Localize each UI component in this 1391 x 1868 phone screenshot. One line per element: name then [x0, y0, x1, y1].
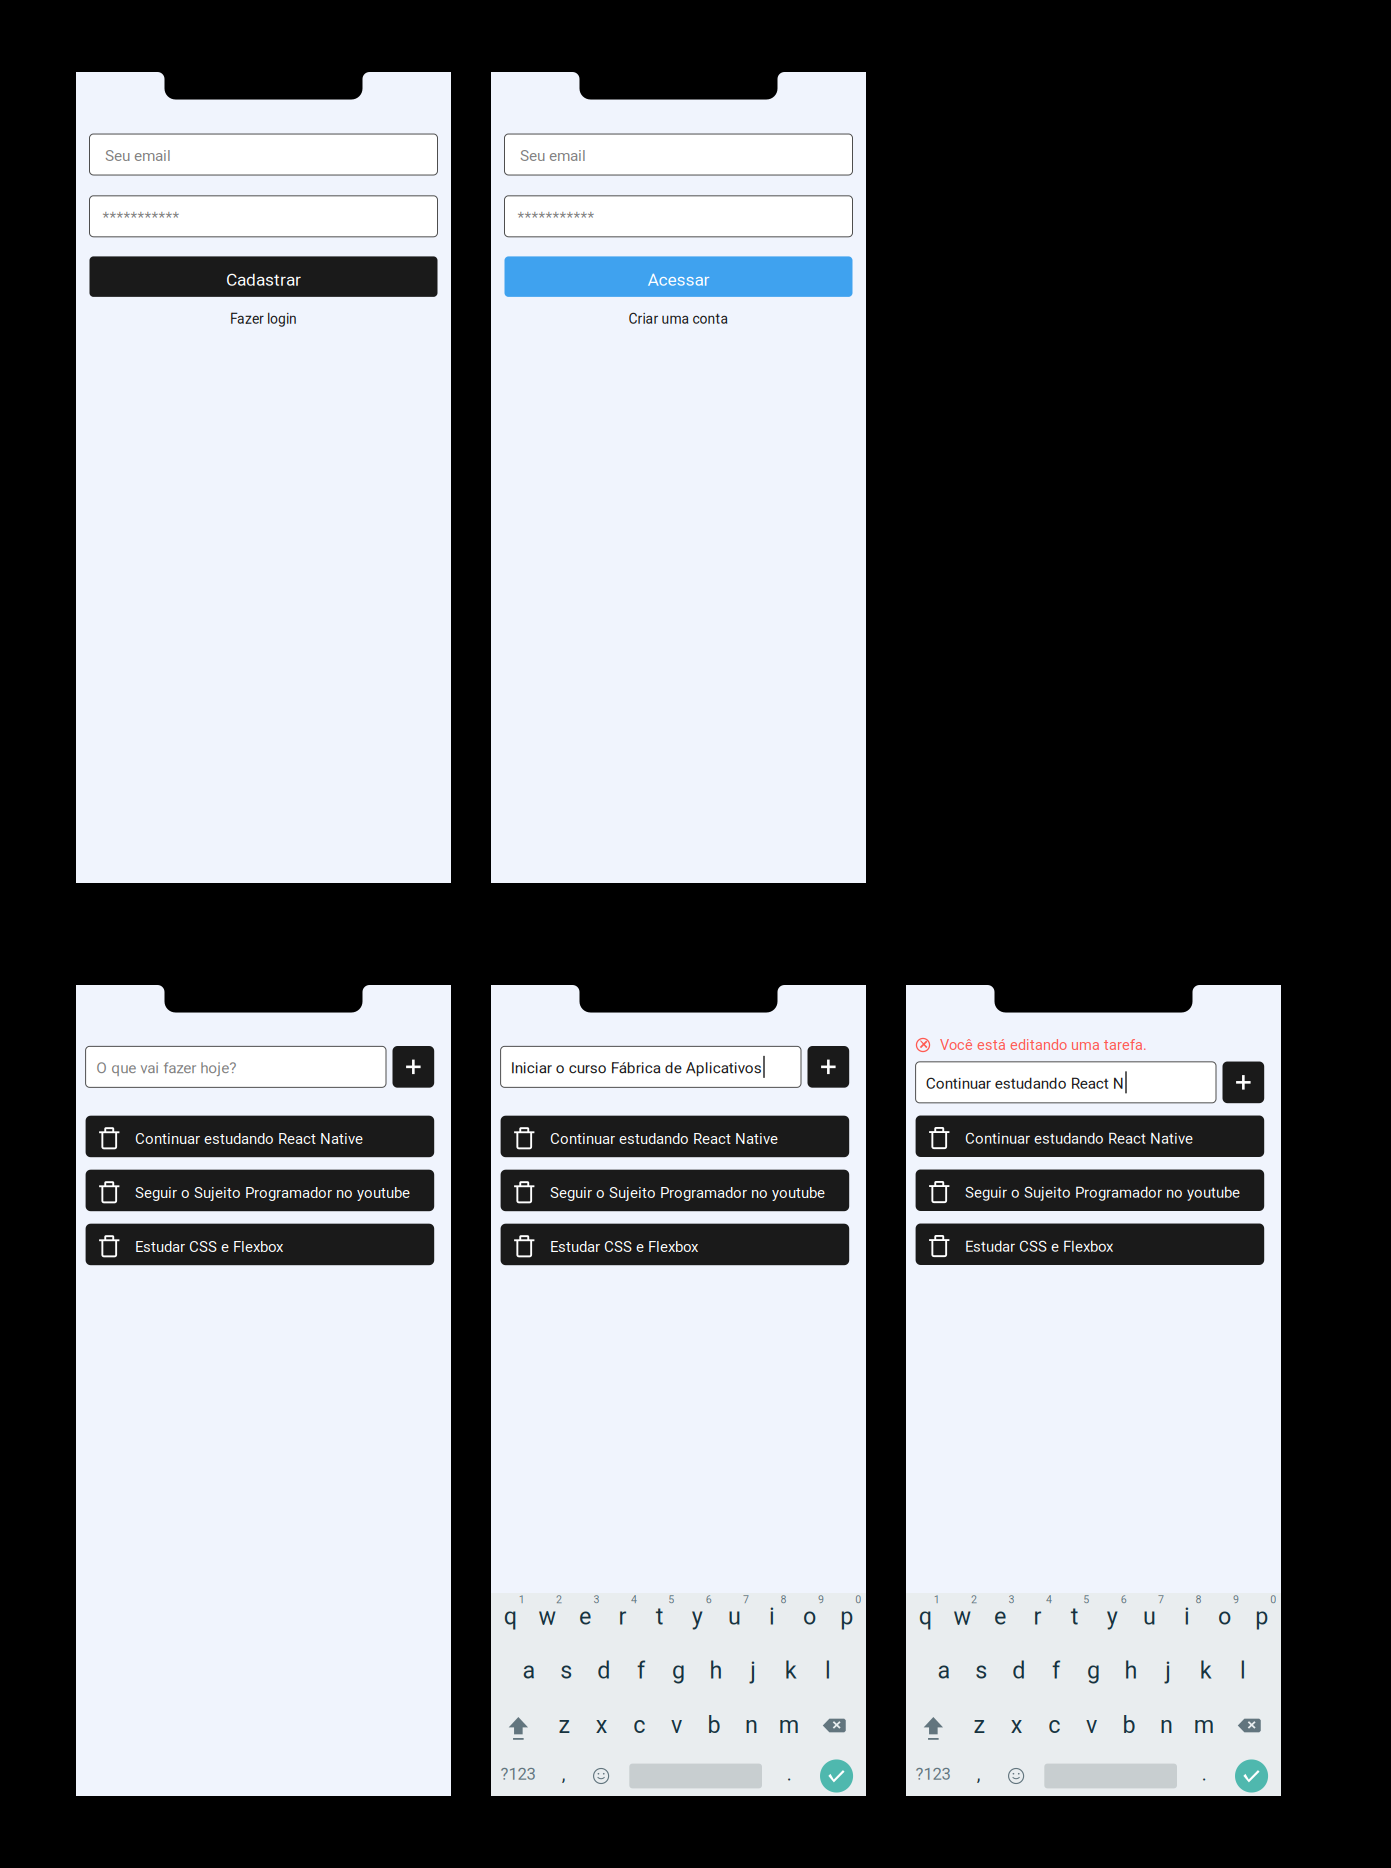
staticText: ?123	[500, 1764, 535, 1784]
staticText: j	[1165, 1657, 1171, 1684]
staticText: w	[954, 1603, 972, 1630]
staticText: x	[596, 1711, 608, 1739]
staticText: Iniciar o curso Fábrica de Aplicativos	[511, 1059, 762, 1077]
staticText: a	[937, 1657, 950, 1684]
staticText: i	[1184, 1603, 1190, 1630]
button[interactable]: Adicionar tarefa	[392, 1046, 434, 1088]
staticText: i	[769, 1603, 775, 1630]
staticText: d	[597, 1657, 610, 1684]
staticText: l	[1240, 1657, 1246, 1684]
staticText: c	[633, 1711, 645, 1739]
staticText: Continuar estudando React Native	[550, 1130, 778, 1148]
staticText: y	[1107, 1603, 1118, 1630]
staticText: .	[1202, 1763, 1207, 1785]
button[interactable]: Criar uma conta	[504, 308, 852, 330]
staticText: Acessar	[647, 270, 709, 290]
staticText: Continuar estudando React Native	[135, 1130, 363, 1148]
staticText: 6	[1121, 1593, 1127, 1606]
staticText: t	[656, 1603, 664, 1630]
staticText: Continuar estudando React N	[926, 1075, 1124, 1093]
staticText: Seu email	[520, 147, 586, 165]
staticText: p	[1255, 1603, 1268, 1630]
staticText: ?123	[915, 1764, 950, 1784]
staticText: ,	[562, 1763, 566, 1785]
staticText: m	[779, 1711, 799, 1739]
staticText: j	[750, 1657, 756, 1684]
staticText: t	[1071, 1603, 1079, 1630]
staticText: b	[1122, 1711, 1135, 1739]
staticText: Seguir o Sujeito Programador no youtube	[135, 1184, 410, 1202]
staticText: 0	[855, 1593, 861, 1606]
staticText: h	[1124, 1657, 1137, 1684]
staticText: r	[618, 1603, 626, 1630]
staticText: c	[1048, 1711, 1060, 1739]
staticText: 4	[1046, 1593, 1052, 1606]
button[interactable]: Seguir o Sujeito Programador no youtube	[916, 1169, 1264, 1211]
staticText: Estudar CSS e Flexbox	[550, 1238, 698, 1256]
staticText: q	[504, 1603, 517, 1630]
button[interactable]: Estudar CSS e Flexbox	[501, 1224, 849, 1265]
staticText: s	[560, 1657, 572, 1684]
staticText: n	[745, 1711, 758, 1739]
staticText: Fazer login	[230, 311, 297, 327]
staticText: z	[973, 1711, 985, 1739]
staticText: 8	[1195, 1593, 1201, 1606]
staticText: Seu email	[105, 147, 171, 165]
staticText: k	[1200, 1657, 1212, 1684]
staticText: n	[1160, 1711, 1173, 1739]
button[interactable]: Acessar	[504, 256, 852, 297]
staticText: 6	[706, 1593, 712, 1606]
staticText: Criar uma conta	[628, 311, 728, 327]
staticText: q	[919, 1603, 932, 1630]
staticText: Seguir o Sujeito Programador no youtube	[550, 1184, 825, 1202]
staticText: d	[1012, 1657, 1025, 1684]
staticText: b	[707, 1711, 720, 1739]
button[interactable]: Adicionar tarefa	[807, 1046, 849, 1088]
button[interactable]: Estudar CSS e Flexbox	[86, 1224, 434, 1265]
button[interactable]: Continuar estudando React Native	[501, 1116, 849, 1157]
staticText: m	[1194, 1711, 1214, 1739]
staticText: 8	[780, 1593, 786, 1606]
button[interactable]: Estudar CSS e Flexbox	[916, 1223, 1264, 1265]
staticText: s	[975, 1657, 987, 1684]
staticText: O que vai fazer hoje?	[96, 1059, 236, 1077]
button[interactable]: Seguir o Sujeito Programador no youtube	[86, 1170, 434, 1211]
staticText: Continuar estudando React Native	[965, 1130, 1193, 1147]
staticText: 3	[1008, 1593, 1014, 1606]
staticText: Você está editando uma tarefa.	[940, 1036, 1147, 1054]
staticText: ***********	[102, 208, 179, 226]
staticText: a	[522, 1657, 535, 1684]
staticText: ***********	[517, 208, 594, 226]
staticText: r	[1033, 1603, 1041, 1630]
staticText: Seguir o Sujeito Programador no youtube	[965, 1184, 1240, 1201]
staticText: e	[579, 1603, 591, 1630]
staticText: w	[539, 1603, 557, 1630]
staticText: Estudar CSS e Flexbox	[135, 1238, 283, 1256]
button[interactable]: Seguir o Sujeito Programador no youtube	[501, 1170, 849, 1211]
staticText: h	[709, 1657, 722, 1684]
staticText: 7	[743, 1593, 749, 1606]
staticText: y	[692, 1603, 703, 1630]
button[interactable]: Cadastrar	[89, 256, 437, 297]
staticText: 1	[519, 1593, 525, 1606]
staticText: 5	[668, 1593, 674, 1606]
staticText: 2	[971, 1593, 977, 1606]
staticText: Estudar CSS e Flexbox	[965, 1238, 1113, 1255]
staticText: o	[1218, 1603, 1231, 1630]
staticText: 2	[556, 1593, 562, 1606]
staticText: 9	[1233, 1593, 1239, 1606]
button[interactable]: Continuar estudando React Native	[916, 1115, 1264, 1157]
button[interactable]: Fazer login	[89, 308, 437, 330]
staticText: u	[728, 1603, 741, 1630]
staticText: l	[825, 1657, 831, 1684]
button[interactable]: Adicionar tarefa	[1222, 1061, 1264, 1103]
staticText: ,	[977, 1763, 981, 1785]
staticText: 0	[1270, 1593, 1276, 1606]
staticText: f	[1052, 1657, 1060, 1684]
staticText: v	[1086, 1711, 1097, 1739]
staticText: 1	[934, 1593, 940, 1606]
staticText: k	[785, 1657, 797, 1684]
button[interactable]: Continuar estudando React Native	[86, 1116, 434, 1157]
staticText: 9	[818, 1593, 824, 1606]
staticText: .	[787, 1763, 792, 1785]
